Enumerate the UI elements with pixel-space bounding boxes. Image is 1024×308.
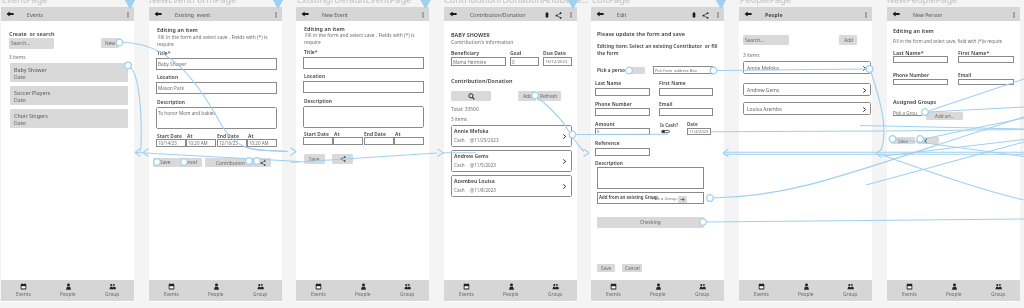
button[interactable]: Choir Singers: [10, 109, 128, 128]
button[interactable]: 16/12/2023: [543, 57, 572, 66]
button[interactable]: Group: [828, 280, 872, 301]
button[interactable]: People: [46, 280, 90, 301]
button[interactable]: [303, 106, 424, 128]
button[interactable]: Add group: [678, 196, 687, 203]
button[interactable]: Add from an existing Group: [597, 192, 704, 204]
button[interactable]: More options: [714, 11, 721, 18]
button[interactable]: Events: [296, 280, 341, 301]
button[interactable]: People: [489, 280, 533, 301]
button[interactable]: More options: [1010, 11, 1017, 18]
button[interactable]: Contribution: [205, 158, 271, 167]
button[interactable]: Group: [533, 280, 577, 301]
button[interactable]: Back: [5, 9, 14, 18]
button[interactable]: Azembeu Louisa: [451, 175, 572, 197]
button[interactable]: New: [101, 38, 119, 48]
button[interactable]: Back: [917, 137, 939, 144]
button[interactable]: Save: [891, 137, 915, 144]
button[interactable]: Events: [591, 280, 636, 301]
button[interactable]: More options: [124, 11, 131, 18]
button[interactable]: Andrew Gems: [743, 83, 871, 96]
button[interactable]: [333, 137, 363, 145]
button[interactable]: More options: [567, 11, 574, 18]
button[interactable]: Save: [153, 158, 177, 167]
button[interactable]: Refresh: [537, 91, 561, 101]
button[interactable]: Back: [595, 9, 604, 18]
button[interactable]: 10/14/23: [156, 139, 186, 147]
button[interactable]: 0: [595, 128, 650, 135]
button[interactable]: [595, 88, 650, 96]
button[interactable]: Back: [153, 9, 162, 18]
button[interactable]: People: [341, 280, 385, 301]
button[interactable]: Group: [976, 280, 1020, 301]
button[interactable]: Save: [597, 264, 615, 272]
button[interactable]: Events: [444, 280, 489, 301]
button[interactable]: [659, 88, 713, 96]
button[interactable]: Share: [332, 154, 353, 164]
button[interactable]: Mason Park: [156, 82, 277, 94]
button[interactable]: 10:20 AM: [247, 139, 277, 147]
button[interactable]: [597, 167, 704, 189]
button[interactable]: To honor Mom and babies: [156, 107, 277, 129]
button[interactable]: Events: [1, 280, 46, 301]
button[interactable]: More options: [419, 11, 426, 18]
button[interactable]: Share: [554, 11, 562, 19]
button[interactable]: 10:20 AM: [186, 139, 216, 147]
button[interactable]: More options: [862, 11, 869, 18]
button[interactable]: [303, 57, 424, 69]
button[interactable]: [364, 137, 394, 145]
button[interactable]: Soccer Players: [10, 86, 128, 105]
button[interactable]: [958, 79, 1014, 85]
button[interactable]: Group: [680, 280, 724, 301]
button[interactable]: [303, 81, 424, 93]
button[interactable]: Mama Hermine: [451, 57, 506, 66]
button[interactable]: Back: [448, 9, 457, 18]
button[interactable]: Baby Shower: [156, 58, 277, 70]
button[interactable]: [631, 67, 645, 74]
button[interactable]: Cancel: [177, 158, 202, 167]
button[interactable]: Events: [739, 280, 784, 301]
button[interactable]: [394, 137, 424, 145]
button[interactable]: Annie Mefoka: [451, 125, 572, 147]
button[interactable]: Add: [839, 35, 857, 45]
button[interactable]: Group: [238, 280, 282, 301]
button[interactable]: Cancel: [622, 264, 642, 272]
button[interactable]: Call: [543, 11, 551, 19]
button[interactable]: Group: [90, 280, 134, 301]
button[interactable]: Back: [891, 9, 900, 18]
button[interactable]: [303, 137, 333, 145]
button[interactable]: People: [932, 280, 976, 301]
button[interactable]: [893, 56, 948, 63]
button[interactable]: Save: [304, 154, 325, 164]
button[interactable]: Baby Shower: [10, 63, 128, 82]
button[interactable]: [595, 148, 650, 156]
button[interactable]: People: [636, 280, 680, 301]
button[interactable]: [893, 79, 948, 85]
button[interactable]: People: [784, 280, 828, 301]
button[interactable]: Add: [518, 91, 536, 101]
button[interactable]: Search...: [9, 38, 54, 49]
button[interactable]: [958, 56, 1014, 63]
button[interactable]: Pick a Grou: [893, 109, 922, 117]
button[interactable]: Group: [385, 280, 429, 301]
button[interactable]: Add urt...: [926, 112, 963, 120]
button[interactable]: Pick from address Boo: [653, 66, 713, 74]
button[interactable]: 12/16/23: [217, 139, 247, 147]
button[interactable]: Share: [701, 11, 709, 19]
button[interactable]: Search: [451, 91, 491, 101]
button[interactable]: Louisa Azembo: [743, 102, 871, 115]
button[interactable]: [595, 108, 650, 116]
button[interactable]: Call: [690, 11, 698, 19]
button[interactable]: Checking: [597, 217, 704, 228]
button[interactable]: Back: [743, 9, 752, 18]
button[interactable]: Back: [300, 9, 309, 18]
button[interactable]: Events: [149, 280, 194, 301]
button[interactable]: Events: [887, 280, 932, 301]
button[interactable]: More options: [272, 11, 279, 18]
button[interactable]: 11/4/2023: [687, 128, 711, 135]
button[interactable]: [659, 108, 713, 116]
button[interactable]: Search...: [743, 35, 789, 45]
button[interactable]: Andrew Gems: [451, 150, 572, 172]
button[interactable]: 0: [510, 57, 539, 66]
button[interactable]: People: [194, 280, 238, 301]
button[interactable]: Annie Mefoka: [743, 61, 871, 74]
